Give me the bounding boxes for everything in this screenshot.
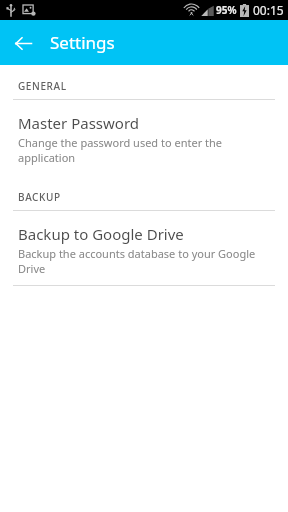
button[interactable]: Master Password <box>0 100 288 174</box>
staticText: Backup the accounts database to your Goo… <box>18 246 274 276</box>
button[interactable]: Backup to Google Drive <box>0 211 288 285</box>
button[interactable]: Back <box>9 29 37 57</box>
staticText: Master Password <box>18 113 140 133</box>
staticText: 95% <box>216 3 237 17</box>
staticText: Change the password used to enter the ap… <box>18 135 274 165</box>
staticText: 00:15 <box>253 2 284 18</box>
staticText: BACKUP <box>18 190 61 204</box>
staticText: Settings <box>50 31 115 54</box>
staticText: Backup to Google Drive <box>18 224 184 244</box>
staticText: GENERAL <box>18 79 67 93</box>
